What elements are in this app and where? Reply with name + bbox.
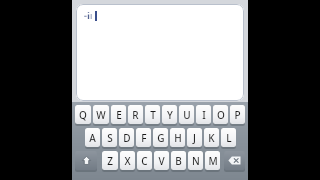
staticText: S <box>107 131 113 145</box>
button[interactable]: G <box>153 128 168 148</box>
staticText: X <box>124 154 131 168</box>
button[interactable]: H <box>170 128 185 148</box>
staticText: O <box>217 108 225 122</box>
button[interactable] <box>76 4 244 101</box>
staticText: K <box>208 131 215 145</box>
button[interactable]: E <box>111 105 126 125</box>
button[interactable]: Shift <box>75 151 97 171</box>
staticText: Q <box>79 108 87 122</box>
button[interactable]: F <box>136 128 151 148</box>
staticText: I <box>202 108 206 122</box>
button[interactable]: R <box>128 105 143 125</box>
staticText: V <box>158 154 165 168</box>
button[interactable]: U <box>179 105 194 125</box>
staticText: D <box>123 131 131 145</box>
staticText: G <box>157 131 165 145</box>
staticText: C <box>141 154 148 168</box>
button[interactable]: B <box>171 151 186 171</box>
button[interactable]: S <box>102 128 117 148</box>
button[interactable]: N <box>188 151 203 171</box>
button[interactable]: V <box>154 151 169 171</box>
staticText: U <box>183 108 191 122</box>
button[interactable]: O <box>213 105 228 125</box>
staticText: R <box>132 108 139 122</box>
button[interactable]: X <box>120 151 135 171</box>
button[interactable]: J <box>187 128 202 148</box>
button[interactable]: C <box>137 151 152 171</box>
staticText: L <box>226 131 232 145</box>
button[interactable]: L <box>221 128 236 148</box>
staticText: Y <box>167 108 173 122</box>
staticText: N <box>192 154 200 168</box>
button[interactable]: Backspace <box>224 151 245 171</box>
staticText: W <box>96 108 106 122</box>
staticText: B <box>175 154 182 168</box>
staticText: J <box>193 131 196 145</box>
button[interactable]: D <box>119 128 134 148</box>
staticText: A <box>89 131 96 145</box>
button[interactable]: Y <box>162 105 177 125</box>
staticText: H <box>174 131 182 145</box>
button[interactable]: A <box>85 128 100 148</box>
button[interactable]: I <box>196 105 211 125</box>
staticText: E <box>116 108 122 122</box>
staticText: M <box>208 154 218 168</box>
button[interactable]: T <box>145 105 160 125</box>
staticText: F <box>141 131 147 145</box>
staticText: T <box>150 108 156 122</box>
button[interactable]: Q <box>75 105 91 125</box>
staticText: P <box>234 108 241 122</box>
button[interactable]: Z <box>102 151 118 171</box>
button[interactable]: K <box>204 128 219 148</box>
staticText: Z <box>107 154 113 168</box>
button[interactable]: P <box>230 105 245 125</box>
button[interactable]: M <box>205 151 220 171</box>
button[interactable]: W <box>93 105 109 125</box>
